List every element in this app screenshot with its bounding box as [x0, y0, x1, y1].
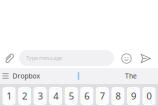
button[interactable]: Attach file: [0, 49, 18, 67]
staticText: 8: [115, 90, 120, 102]
button[interactable]: Predictive suggestion: [53, 68, 104, 84]
staticText: 0: [146, 90, 151, 102]
button[interactable]: Emoji: [118, 50, 134, 66]
staticText: 2: [22, 90, 27, 102]
staticText: 4: [53, 90, 58, 102]
staticText: Dropbox: [12, 72, 40, 80]
staticText: 5: [69, 90, 74, 102]
button[interactable]: 4: [49, 87, 62, 105]
button[interactable]: 7: [96, 87, 109, 105]
button[interactable]: 5: [65, 87, 78, 105]
staticText: Type message: [26, 54, 62, 62]
staticText: 3: [38, 90, 43, 102]
button[interactable]: 1: [2, 87, 15, 105]
button[interactable]: 3: [34, 87, 47, 105]
button[interactable]: Send: [138, 50, 154, 66]
button[interactable]: Dropbox: [0, 72, 53, 80]
button[interactable]: 0: [142, 87, 155, 105]
button[interactable]: The: [104, 72, 158, 80]
button[interactable]: 2: [18, 87, 31, 105]
staticText: 7: [100, 90, 105, 102]
staticText: 6: [84, 90, 89, 102]
staticText: The: [125, 72, 137, 80]
button[interactable]: 6: [80, 87, 93, 105]
staticText: 9: [131, 90, 136, 102]
button[interactable]: 8: [111, 87, 124, 105]
button[interactable]: 9: [127, 87, 140, 105]
staticText: 1: [6, 90, 11, 102]
